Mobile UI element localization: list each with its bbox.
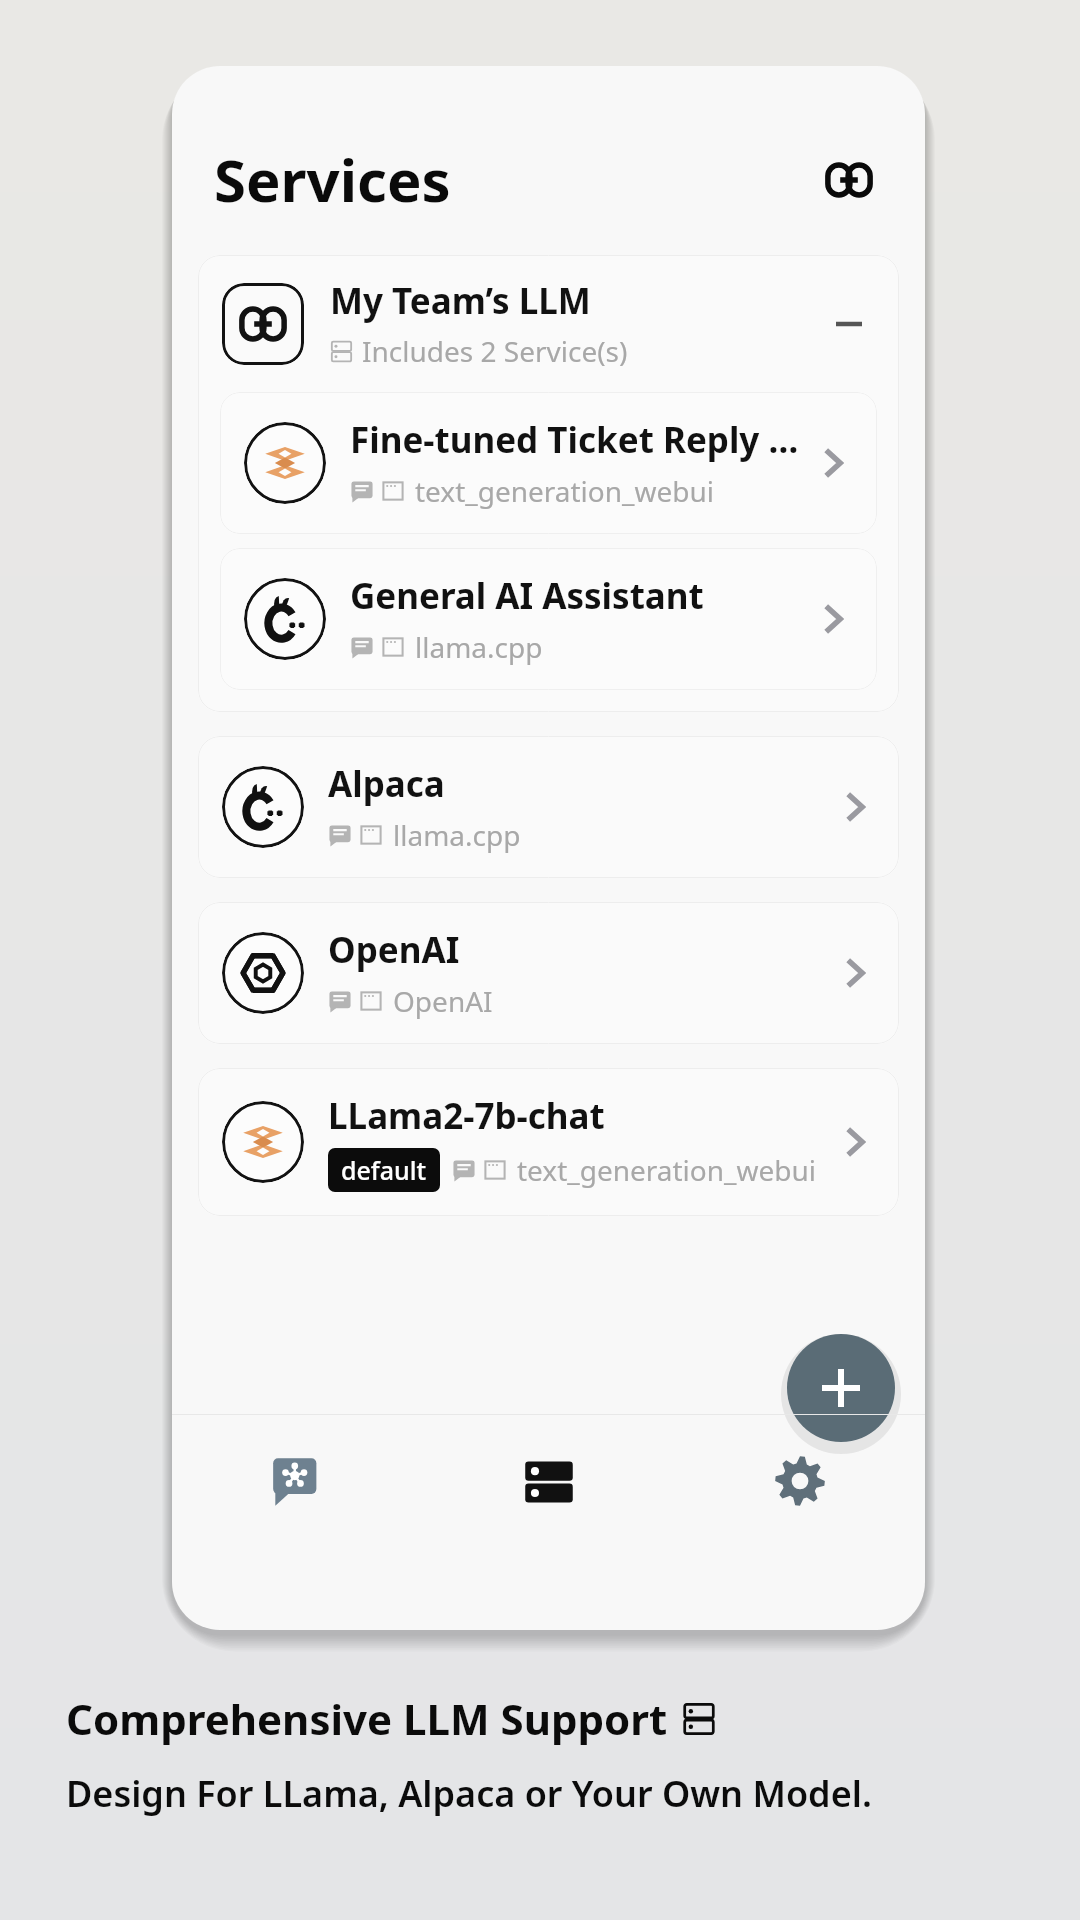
button[interactable]: Link services: [817, 148, 881, 212]
button[interactable]: Services: [423, 1415, 674, 1570]
button[interactable]: Alpaca: [198, 736, 899, 878]
staticText: Comprehensive LLM Support: [66, 1690, 668, 1747]
button[interactable]: My Team’s LLM: [198, 255, 899, 392]
staticText: Services: [214, 140, 451, 219]
staticText: Alpaca: [328, 760, 445, 808]
button[interactable]: LLama2-7b-chat: [198, 1068, 899, 1216]
button[interactable]: Fine-tuned Ticket Reply M...: [220, 392, 877, 534]
button[interactable]: General AI Assistant: [220, 548, 877, 690]
staticText: OpenAI: [393, 982, 493, 1020]
button[interactable]: Add service: [787, 1334, 895, 1442]
staticText: Design For LLama, Alpaca or Your Own Mod…: [66, 1769, 872, 1818]
staticText: llama.cpp: [393, 816, 521, 854]
staticText: text_generation_webui: [517, 1151, 817, 1189]
staticText: default: [341, 1153, 427, 1187]
button[interactable]: Collapse group: [823, 298, 875, 350]
staticText: General AI Assistant: [350, 572, 704, 620]
staticText: Fine-tuned Ticket Reply M...: [350, 416, 801, 464]
button[interactable]: Settings: [674, 1415, 925, 1570]
button[interactable]: Chats: [172, 1415, 423, 1570]
staticText: OpenAI: [328, 926, 460, 974]
staticText: llama.cpp: [415, 628, 543, 666]
button[interactable]: OpenAI: [198, 902, 899, 1044]
staticText: My Team’s LLM: [330, 277, 591, 325]
staticText: text_generation_webui: [415, 472, 715, 510]
staticText: Includes 2 Service(s): [362, 332, 628, 370]
staticText: LLama2-7b-chat: [328, 1092, 605, 1140]
